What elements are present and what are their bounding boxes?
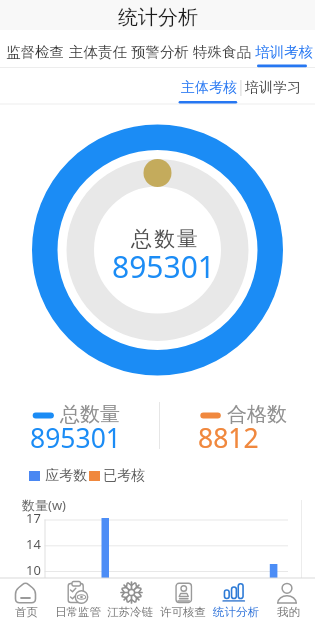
button[interactable]: 首页 [0, 578, 52, 628]
staticText: 已考核 [103, 467, 145, 485]
staticText: 17 [26, 509, 41, 527]
staticText: 数量(w) [22, 496, 67, 514]
button[interactable]: 主体责任 [66, 35, 129, 68]
staticText: 主体考核 [181, 79, 237, 97]
staticText: 合格数 [227, 402, 287, 427]
button[interactable]: 江苏冷链 [104, 578, 156, 628]
staticText: 统计分析 [213, 605, 259, 619]
button[interactable]: 统计分析 [209, 578, 262, 628]
staticText: 特殊食品 [193, 43, 251, 61]
button[interactable]: 培训考核 [253, 35, 315, 68]
button[interactable]: 培训学习 [244, 72, 302, 104]
button[interactable]: 监督检查 [3, 35, 66, 68]
staticText: 总数量 [130, 226, 199, 252]
staticText: 主体责任 [69, 43, 127, 61]
staticText: 日常监管 [55, 605, 101, 619]
staticText: 预警分析 [131, 43, 189, 61]
staticText: 江苏冷链 [107, 605, 153, 619]
staticText: 895301 [112, 246, 215, 287]
button[interactable]: 预警分析 [129, 35, 191, 68]
staticText: 我的 [277, 605, 300, 619]
staticText: 14 [26, 535, 41, 553]
button[interactable]: 日常监管 [52, 578, 104, 628]
staticText: 培训学习 [245, 79, 301, 97]
staticText: 首页 [15, 605, 38, 619]
button[interactable]: 我的 [262, 578, 315, 628]
staticText: 统计分析 [118, 5, 198, 30]
staticText: 总数量 [60, 402, 120, 427]
staticText: 895301 [30, 420, 121, 456]
button[interactable]: 特殊食品 [191, 35, 253, 68]
staticText: 10 [26, 561, 41, 579]
button[interactable]: 主体考核 [180, 72, 238, 104]
staticText: 许可核查 [160, 605, 206, 619]
staticText: 应考数 [45, 467, 87, 485]
staticText: 培训考核 [255, 43, 313, 61]
button[interactable]: 许可核查 [156, 578, 209, 628]
staticText: 8812 [198, 420, 259, 456]
staticText: 监督检查 [6, 43, 64, 61]
